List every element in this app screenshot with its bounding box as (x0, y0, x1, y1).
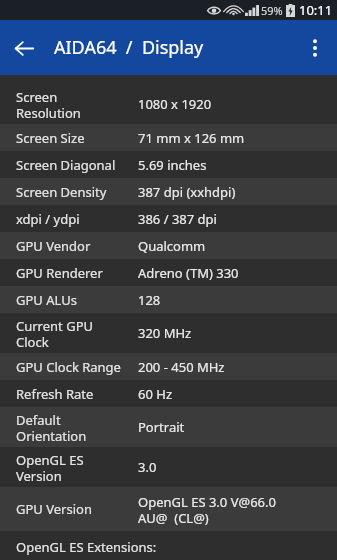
staticText: 200 - 450 MHz (138, 358, 225, 376)
staticText: 1080 x 1920 (138, 95, 212, 113)
staticText: Refresh Rate (16, 385, 94, 403)
staticText: Default Orientation (16, 411, 87, 444)
button[interactable]: GPU ALUs (0, 286, 337, 313)
staticText: xdpi / ydpi (16, 210, 80, 228)
staticText: Screen Diagonal (16, 156, 116, 174)
staticText: 60 Hz (138, 385, 172, 403)
button[interactable]: Screen Density (0, 178, 337, 205)
button[interactable]: GPU Vendor (0, 232, 337, 259)
button[interactable]: Current GPU Clock (0, 313, 337, 353)
button[interactable]: More options (293, 26, 337, 70)
button[interactable]: OpenGL ES Version (0, 447, 337, 487)
staticText: 10:11 (299, 1, 333, 19)
staticText: GPU Version (16, 500, 92, 518)
staticText: Screen Resolution (16, 88, 81, 121)
staticText: 5.69 inches (138, 156, 207, 174)
staticText: Screen Size (16, 129, 85, 147)
button[interactable]: xdpi / ydpi (0, 205, 337, 232)
staticText: GPU Renderer (16, 264, 103, 282)
staticText: 386 / 387 dpi (138, 210, 217, 228)
button[interactable]: Default Orientation (0, 407, 337, 447)
button[interactable]: GPU Clock Range (0, 353, 337, 380)
staticText: GPU Vendor (16, 237, 91, 255)
staticText: OpenGL ES Extensions: (16, 538, 157, 556)
button[interactable]: Screen Diagonal (0, 151, 337, 178)
staticText: Adreno (TM) 330 (138, 264, 239, 282)
staticText: Portrait (138, 418, 185, 436)
staticText: GPU ALUs (16, 291, 77, 309)
staticText: 3.0 (138, 458, 157, 476)
staticText: 128 (138, 291, 161, 309)
staticText: Current GPU Clock (16, 317, 93, 350)
button[interactable]: Screen Resolution (0, 84, 337, 124)
staticText: Qualcomm (138, 237, 206, 255)
staticText: OpenGL ES 3.0 V@66.0 AU@ (CL@) (138, 493, 276, 526)
staticText: GPU Clock Range (16, 358, 121, 376)
staticText: 71 mm x 126 mm (138, 129, 245, 147)
staticText: 387 dpi (xxhdpi) (138, 183, 236, 201)
button[interactable]: GPU Version (0, 487, 337, 531)
staticText: OpenGL ES Version (16, 451, 84, 484)
button[interactable]: OpenGL ES Extensions: (0, 531, 337, 560)
button[interactable]: GPU Renderer (0, 259, 337, 286)
staticText: 320 MHz (138, 324, 192, 342)
staticText: Screen Density (16, 183, 107, 201)
staticText: 59% (261, 3, 283, 18)
button[interactable]: Refresh Rate (0, 380, 337, 407)
button[interactable]: Back (0, 24, 48, 72)
staticText: AIDA64 / Display (54, 35, 204, 60)
button[interactable]: Screen Size (0, 124, 337, 151)
